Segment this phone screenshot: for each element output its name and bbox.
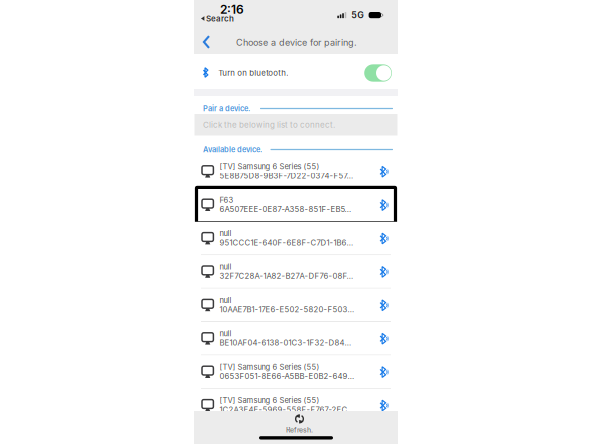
button[interactable]: [TV] Samsung 6 Series (55) (194, 389, 398, 422)
staticText: 5G (351, 10, 364, 20)
staticText: Search (206, 14, 234, 23)
staticText: Available device. (203, 145, 262, 154)
staticText: [TV] Samsung 6 Series (55) (219, 396, 319, 405)
staticText: null (219, 329, 231, 338)
staticText: 10AAE7B1-17E6-E502-5820-F503… (219, 305, 354, 314)
button[interactable]: Back (196, 26, 217, 54)
staticText: Turn on bluetooth. (218, 68, 288, 78)
button[interactable]: null (194, 289, 398, 322)
staticText: [TV] Samsung 6 Series (55) (219, 362, 319, 371)
staticText: Pair a device. (203, 104, 250, 113)
staticText: 1C2A3E4E-5969-558F-F767-2EC… (219, 405, 354, 414)
button[interactable]: F63 (194, 188, 398, 222)
staticText: Click the belowing list to connect. (203, 120, 335, 130)
staticText: 0653F051-8E66-A5BB-E0B2-649… (219, 371, 354, 381)
staticText: 5E8B75D8-9B3F-7D22-0374-F57… (219, 171, 353, 180)
staticText: null (219, 229, 231, 238)
button[interactable]: [TV] Samsung 6 Series (55) (194, 355, 398, 389)
button[interactable]: null (194, 222, 398, 255)
staticText: 6A507EEE-0E87-A358-851F-EB5… (219, 204, 351, 214)
staticText: 2:16 (220, 2, 244, 17)
staticText: null (219, 262, 231, 271)
button[interactable]: Back to Search (201, 15, 234, 22)
staticText: 951CCC1E-640F-6E8F-C7D1-1B6… (219, 238, 353, 247)
button[interactable]: Refresh. (194, 413, 398, 434)
button[interactable]: null (194, 255, 398, 289)
button[interactable]: [TV] Samsung 6 Series (55) (194, 155, 398, 188)
button[interactable]: null (194, 322, 398, 355)
staticText: 32F7C28A-1A82-B27A-DF76-08F… (219, 271, 353, 281)
staticText: F63 (219, 195, 233, 204)
staticText: BE10AF04-6138-01C3-1F32-D84… (219, 338, 351, 347)
staticText: Refresh. (286, 426, 313, 434)
staticText: Choose a device for pairing. (236, 37, 357, 48)
staticText: [TV] Samsung 6 Series (55) (219, 162, 319, 171)
staticText: null (219, 295, 231, 305)
button[interactable]: Turn on bluetooth (364, 64, 392, 82)
